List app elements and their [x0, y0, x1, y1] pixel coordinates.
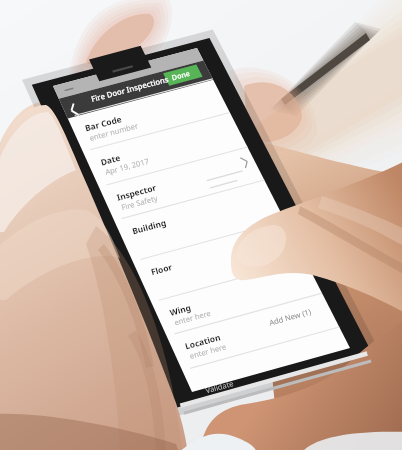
- other: Fire Door Inspections form on phone held…: [0, 0, 402, 450]
